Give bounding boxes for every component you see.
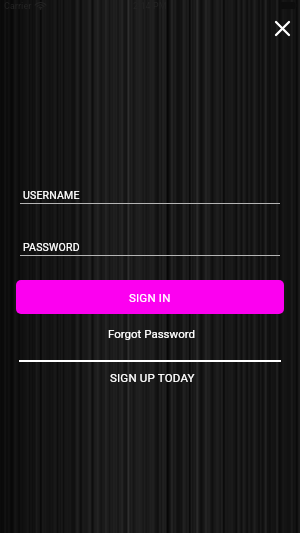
staticText: SIGN UP TODAY — [110, 371, 195, 384]
button[interactable]: SIGN IN — [16, 280, 284, 314]
staticText: PASSWORD — [23, 241, 80, 253]
button[interactable]: USERNAME — [20, 178, 280, 203]
button[interactable]: PASSWORD — [20, 230, 280, 255]
staticText: SIGN IN — [129, 291, 171, 304]
button[interactable]: Close — [267, 13, 297, 43]
staticText: 2:14 PM — [133, 1, 167, 12]
staticText: Forgot Password — [108, 327, 196, 340]
staticText: Carrier — [4, 1, 32, 12]
button[interactable]: Forgot Password — [102, 325, 202, 342]
button[interactable]: SIGN UP TODAY — [102, 369, 202, 386]
staticText: USERNAME — [23, 189, 80, 201]
